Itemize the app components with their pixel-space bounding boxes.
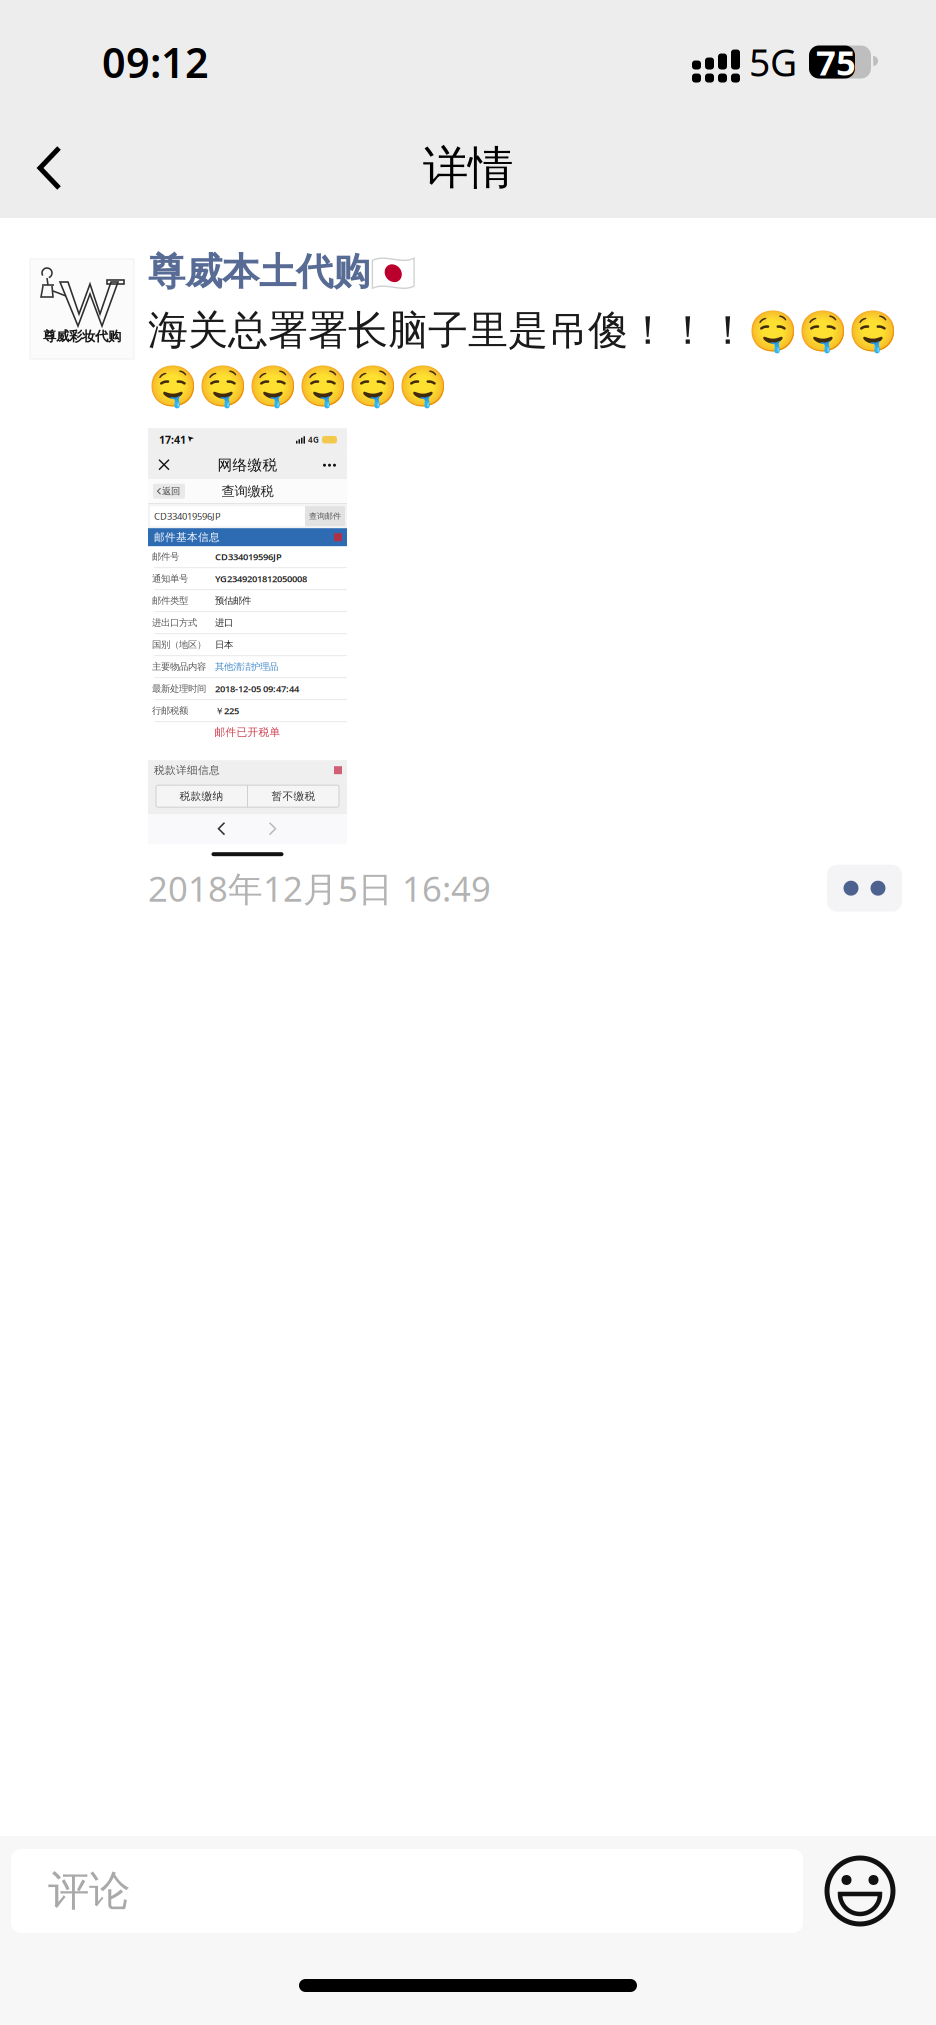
staticText: 17:41 (159, 433, 186, 447)
button[interactable]: Emoji (823, 1854, 897, 1928)
staticText: 暂不缴税 (271, 790, 315, 803)
staticText: 评论 (48, 1866, 130, 1916)
staticText: 尊威彩妆代购 (43, 328, 121, 344)
button[interactable]: 尊威本土代购 profile photo (30, 259, 134, 359)
staticText: 09:12 (102, 35, 209, 89)
staticText: 主要物品内容 (152, 661, 206, 672)
staticText: 尊威本土代购🇯🇵 (148, 249, 416, 295)
staticText: 4G (308, 434, 319, 445)
staticText: 邮件类型 (152, 595, 188, 606)
staticText: 邮件基本信息 (154, 531, 220, 544)
staticText: 国别（地区） (152, 639, 206, 650)
staticText: 5G (749, 37, 797, 87)
staticText: 2018-12-05 09:47:44 (215, 682, 299, 695)
staticText: 邮件已开税单 (214, 726, 280, 739)
staticText: ￥225 (215, 704, 239, 717)
staticText: 海关总署署长脑子里是吊傻！！！🤤🤤🤤🤤🤤🤤🤤🤤🤤 (148, 306, 898, 409)
button[interactable]: 评论 (11, 1849, 803, 1933)
staticText: 预估邮件 (215, 595, 251, 606)
staticText: 日本 (215, 639, 233, 650)
staticText: 通知单号 (152, 573, 188, 584)
staticText: 查询邮件 (309, 511, 341, 521)
staticText: 税款缴纳 (179, 790, 223, 803)
staticText: 网络缴税 (217, 456, 277, 474)
button[interactable]: 尊威本土代购🇯🇵 (148, 249, 416, 295)
staticText: 最新处理时间 (152, 683, 206, 694)
button[interactable]: Attached screenshot (148, 430, 347, 861)
staticText: 详情 (423, 140, 513, 196)
staticText: 邮件号 (152, 551, 179, 562)
staticText: 2018年12月5日 16:49 (148, 865, 491, 911)
staticText: 进出口方式 (152, 617, 197, 628)
staticText: 税款详细信息 (154, 764, 220, 777)
staticText: 查询缴税 (221, 483, 273, 499)
staticText: CD334019596JP (215, 550, 282, 563)
button[interactable]: More actions (827, 865, 902, 912)
staticText: 进口 (215, 617, 233, 628)
staticText: 行邮税额 (152, 705, 188, 716)
staticText: YG2349201812050008 (215, 572, 307, 585)
staticText: CD334019596JP (154, 510, 221, 522)
staticText: 返回 (162, 485, 180, 497)
staticText: 其他清洁护理品 (215, 661, 278, 672)
button[interactable]: Back (0, 118, 100, 218)
staticText: 75 (816, 39, 856, 85)
